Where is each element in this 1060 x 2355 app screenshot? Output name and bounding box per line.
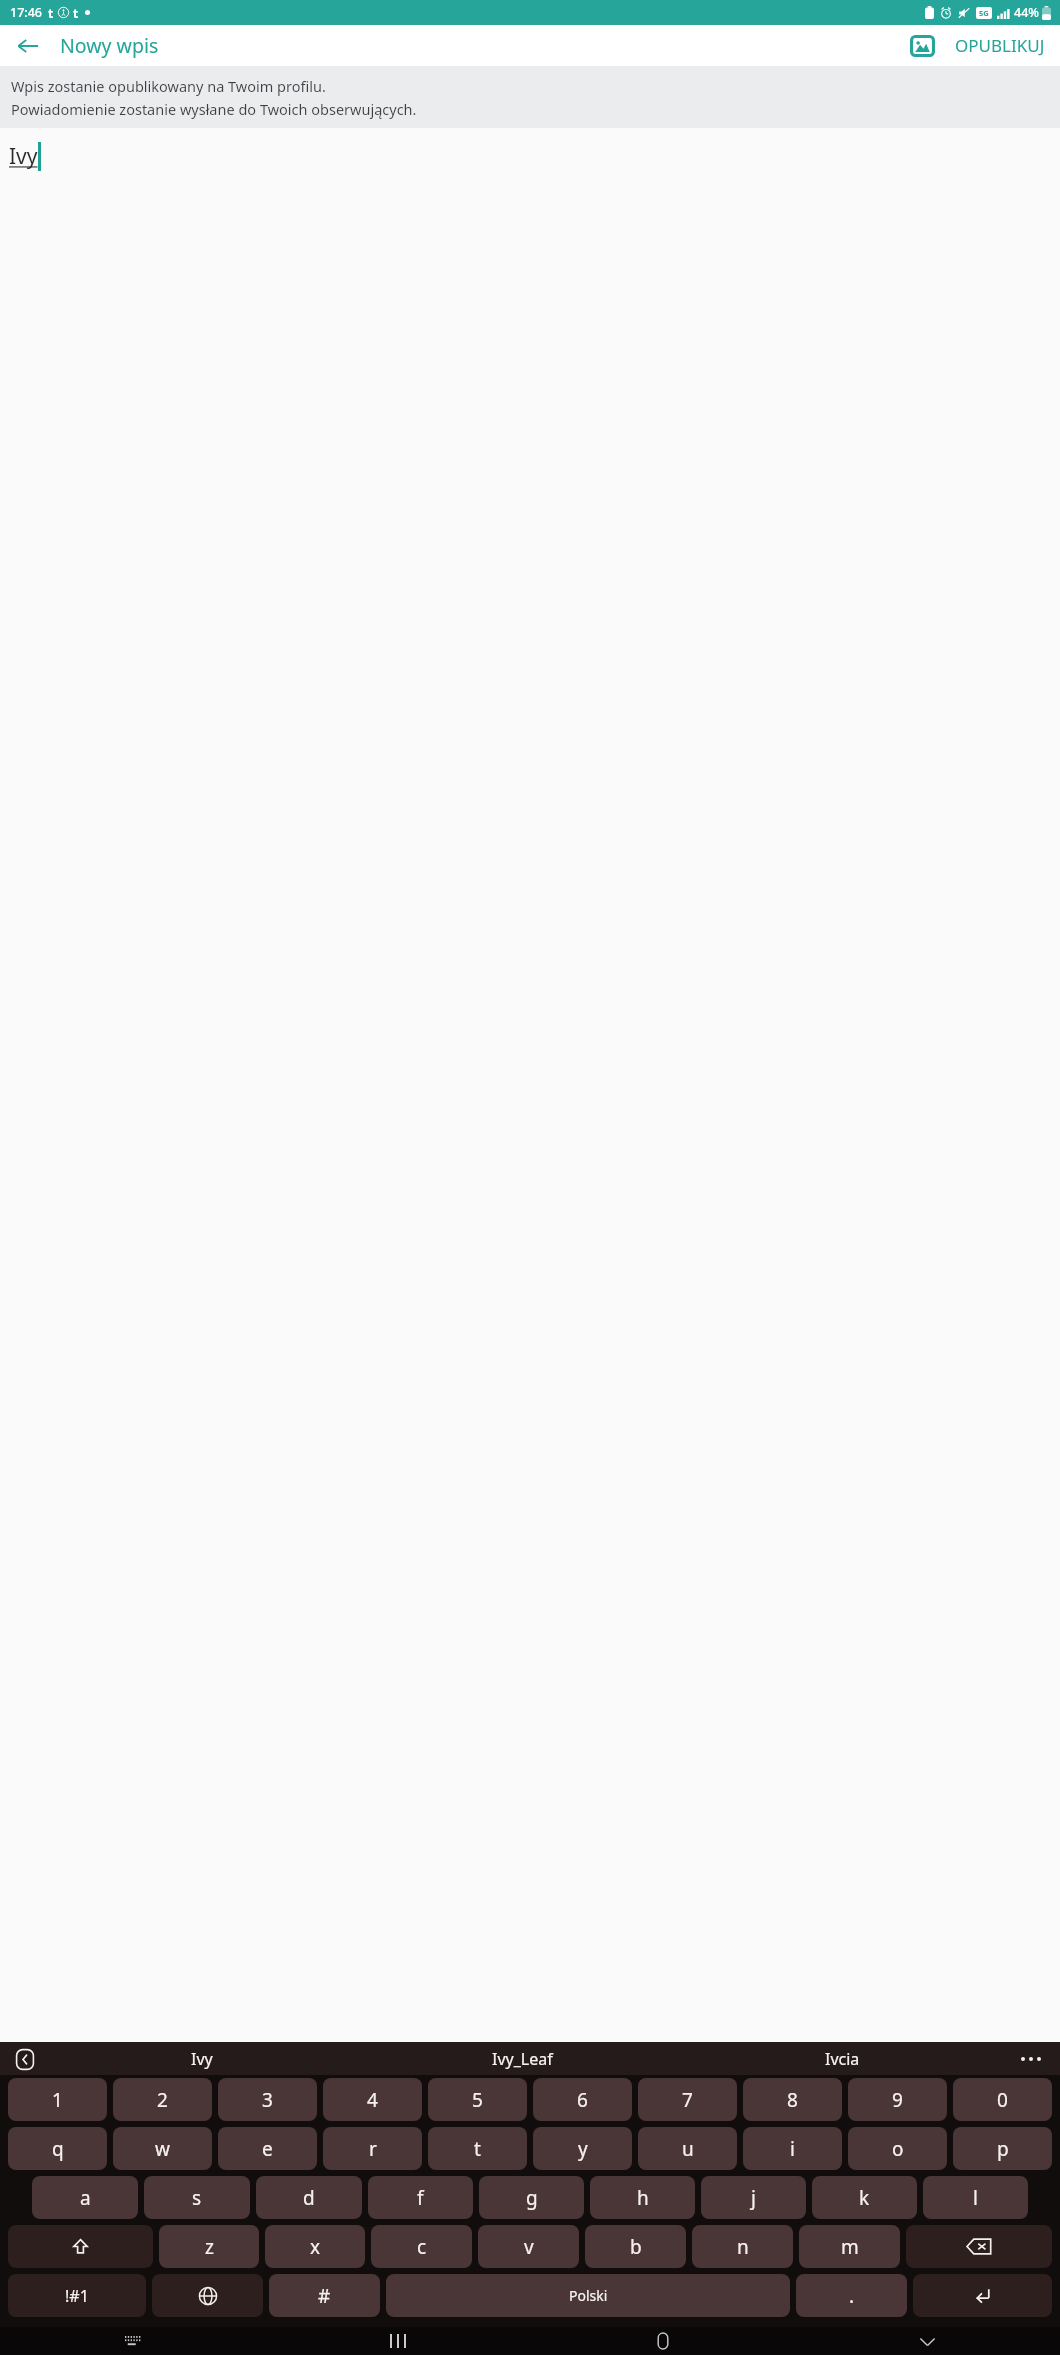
button[interactable]: Ivy	[41, 2042, 362, 2075]
staticText: e	[262, 2136, 273, 2162]
button[interactable]: Backspace	[906, 2225, 1052, 2268]
staticText: x	[310, 2234, 321, 2260]
staticText: t	[73, 5, 79, 21]
staticText: 17:46	[10, 4, 43, 21]
button[interactable]: q	[8, 2127, 107, 2170]
button[interactable]: j	[701, 2176, 806, 2219]
button[interactable]: a	[32, 2176, 138, 2219]
staticText: y	[578, 2136, 588, 2162]
button[interactable]: Poprzednie	[9, 2046, 41, 2072]
staticText: t	[474, 2136, 481, 2162]
button[interactable]: u	[638, 2127, 737, 2170]
staticText: k	[859, 2185, 870, 2211]
button[interactable]: n	[692, 2225, 793, 2268]
button[interactable]: w	[113, 2127, 212, 2170]
button[interactable]: Zmień język	[152, 2274, 263, 2317]
button[interactable]: e	[218, 2127, 317, 2170]
button[interactable]: r	[323, 2127, 422, 2170]
button[interactable]: x	[265, 2225, 365, 2268]
button[interactable]: c	[371, 2225, 472, 2268]
staticText: 8	[787, 2087, 798, 2113]
button[interactable]: 8	[743, 2078, 842, 2121]
staticText: 9	[892, 2087, 903, 2113]
button[interactable]: Polski	[386, 2274, 790, 2317]
staticText: 7	[682, 2087, 693, 2113]
button[interactable]: 2	[113, 2078, 212, 2121]
staticText: a	[80, 2185, 91, 2211]
button[interactable]: 6	[533, 2078, 632, 2121]
staticText: 2	[157, 2087, 168, 2113]
button[interactable]: 9	[848, 2078, 947, 2121]
staticText: f	[417, 2185, 424, 2211]
staticText: u	[682, 2136, 694, 2162]
staticText: 44%	[1014, 4, 1039, 21]
staticText: Ivy	[9, 142, 38, 171]
button[interactable]: Ivy_Leaf	[362, 2042, 682, 2075]
staticText: 6	[577, 2087, 588, 2113]
staticText: m	[841, 2234, 859, 2260]
staticText: w	[155, 2136, 170, 2162]
staticText: .	[849, 2283, 855, 2309]
button[interactable]: #	[269, 2274, 380, 2317]
staticText: !#1	[65, 2285, 89, 2307]
button[interactable]: OPUBLIKUJ	[945, 26, 1055, 65]
button[interactable]: p	[953, 2127, 1052, 2170]
button[interactable]: Dodaj zdjęcie	[899, 25, 945, 66]
staticText: 3	[262, 2087, 273, 2113]
staticText: b	[630, 2234, 642, 2260]
staticText: l	[973, 2185, 978, 2211]
staticText: Polski	[569, 2286, 608, 2305]
staticText: j	[751, 2185, 756, 2211]
button[interactable]: d	[256, 2176, 362, 2219]
button[interactable]: 3	[218, 2078, 317, 2121]
staticText: #	[318, 2283, 331, 2309]
button[interactable]: Wstecz	[795, 2327, 1060, 2355]
staticText: Nowy wpis	[60, 32, 159, 59]
staticText: n	[737, 2234, 749, 2260]
staticText: Ivy	[191, 2048, 213, 2070]
staticText: r	[369, 2136, 377, 2162]
button[interactable]: 5	[428, 2078, 527, 2121]
button[interactable]: 1	[8, 2078, 107, 2121]
button[interactable]: z	[159, 2225, 259, 2268]
button[interactable]: Ivcia	[682, 2042, 1002, 2075]
button[interactable]: t	[428, 2127, 527, 2170]
button[interactable]: v	[478, 2225, 579, 2268]
button[interactable]: Więcej	[1002, 2042, 1060, 2075]
button[interactable]: l	[923, 2176, 1028, 2219]
button[interactable]: b	[585, 2225, 686, 2268]
staticText: s	[192, 2185, 202, 2211]
button[interactable]: 4	[323, 2078, 422, 2121]
staticText: 1	[52, 2087, 63, 2113]
button[interactable]: g	[479, 2176, 584, 2219]
button[interactable]: h	[590, 2176, 695, 2219]
button[interactable]: Ukryj klawiaturę	[0, 2327, 265, 2355]
staticText: 5G	[979, 8, 989, 18]
button[interactable]: y	[533, 2127, 632, 2170]
button[interactable]: s	[144, 2176, 250, 2219]
button[interactable]: Wstecz	[4, 25, 52, 66]
button[interactable]: 0	[953, 2078, 1052, 2121]
button[interactable]: Shift	[8, 2225, 153, 2268]
button[interactable]: f	[368, 2176, 473, 2219]
staticText: g	[526, 2185, 538, 2211]
button[interactable]: Ekran główny	[530, 2327, 795, 2355]
button[interactable]: .	[796, 2274, 907, 2317]
staticText: Powiadomienie zostanie wysłane do Twoich…	[11, 99, 417, 119]
staticText: z	[205, 2234, 214, 2260]
button[interactable]: i	[743, 2127, 842, 2170]
staticText: p	[997, 2136, 1009, 2162]
button[interactable]: !#1	[8, 2274, 146, 2317]
staticText: d	[303, 2185, 315, 2211]
staticText: Ivy_Leaf	[492, 2048, 553, 2070]
button[interactable]: Enter	[913, 2274, 1052, 2317]
staticText: 4	[367, 2087, 378, 2113]
button[interactable]: 7	[638, 2078, 737, 2121]
staticText: o	[892, 2136, 904, 2162]
button[interactable]: k	[812, 2176, 917, 2219]
button[interactable]: o	[848, 2127, 947, 2170]
button[interactable]: m	[799, 2225, 900, 2268]
staticText: v	[524, 2234, 534, 2260]
staticText: OPUBLIKUJ	[955, 34, 1045, 57]
button[interactable]: Ostatnie aplikacje	[265, 2327, 530, 2355]
